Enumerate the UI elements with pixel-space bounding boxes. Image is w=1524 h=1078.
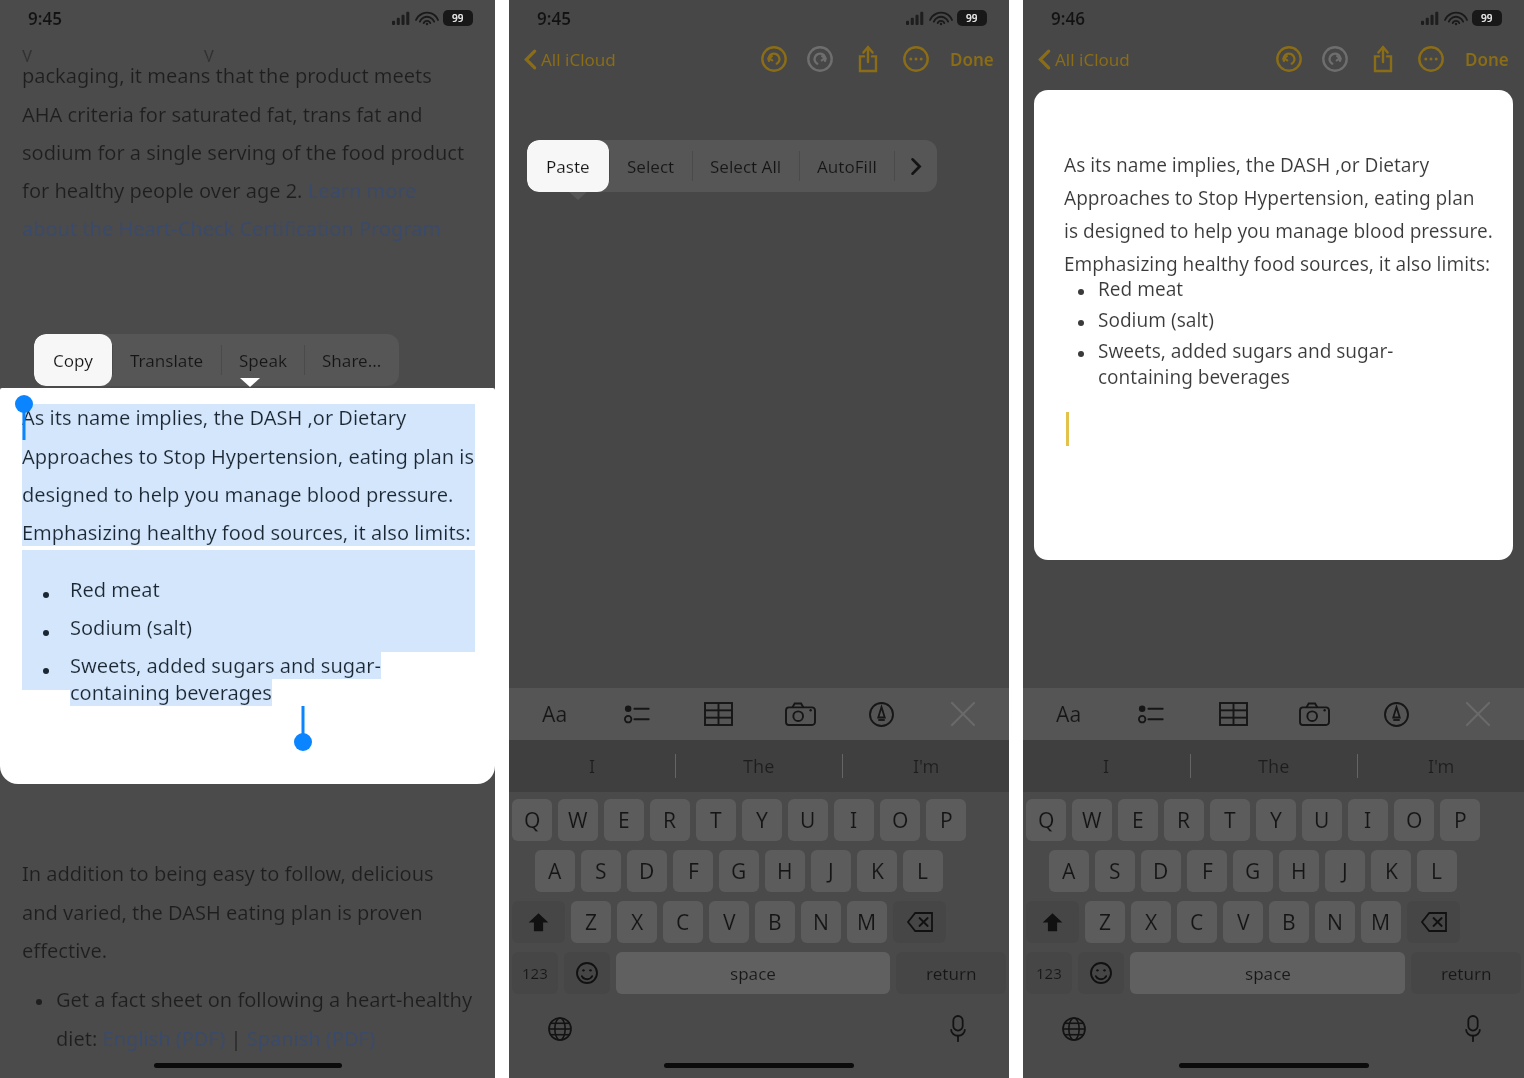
- button[interactable]: space: [616, 952, 890, 994]
- button[interactable]: E: [1118, 799, 1158, 841]
- button[interactable]: D: [627, 850, 667, 892]
- button[interactable]: G: [1233, 850, 1273, 892]
- button[interactable]: Select: [610, 140, 692, 192]
- button[interactable]: Camera: [780, 694, 820, 734]
- button[interactable]: M: [1361, 901, 1401, 943]
- button[interactable]: Z: [1085, 901, 1125, 943]
- button[interactable]: Checklist: [1131, 694, 1171, 734]
- button[interactable]: Change keyboard: [543, 1012, 577, 1046]
- button[interactable]: A: [1049, 850, 1089, 892]
- button[interactable]: space: [1130, 952, 1405, 994]
- button[interactable]: Close: [1458, 694, 1498, 734]
- button[interactable]: Redo: [1320, 44, 1350, 74]
- button[interactable]: F: [1187, 850, 1227, 892]
- button[interactable]: G: [719, 850, 759, 892]
- button[interactable]: T: [1210, 799, 1250, 841]
- button[interactable]: Emoji: [1078, 952, 1124, 994]
- button[interactable]: Shift: [1026, 901, 1079, 943]
- button[interactable]: Backspace: [1407, 901, 1460, 943]
- button[interactable]: Checklist: [617, 694, 657, 734]
- button[interactable]: B: [1269, 901, 1309, 943]
- button[interactable]: More: [1416, 44, 1446, 74]
- button[interactable]: W: [1072, 799, 1112, 841]
- button[interactable]: Format: [535, 694, 575, 734]
- button[interactable]: Change keyboard: [1057, 1012, 1091, 1046]
- button[interactable]: Paste: [527, 140, 609, 192]
- button[interactable]: D: [1141, 850, 1181, 892]
- button[interactable]: Emoji: [564, 952, 610, 994]
- button[interactable]: Shift: [512, 901, 565, 943]
- button[interactable]: Done: [947, 44, 997, 75]
- button[interactable]: O: [880, 799, 920, 841]
- button[interactable]: R: [650, 799, 690, 841]
- button[interactable]: F: [673, 850, 713, 892]
- button[interactable]: Z: [571, 901, 611, 943]
- button[interactable]: U: [788, 799, 828, 841]
- button[interactable]: H: [765, 850, 805, 892]
- button[interactable]: Share: [853, 44, 883, 74]
- button[interactable]: Undo: [1274, 44, 1304, 74]
- button[interactable]: Backspace: [893, 901, 946, 943]
- button[interactable]: Markup: [861, 694, 901, 734]
- button[interactable]: Dictate: [1456, 1012, 1490, 1046]
- button[interactable]: Done: [1462, 44, 1512, 75]
- button[interactable]: Select All: [693, 140, 799, 192]
- button[interactable]: H: [1279, 850, 1319, 892]
- button[interactable]: X: [1131, 901, 1171, 943]
- button[interactable]: Share: [1368, 44, 1398, 74]
- button[interactable]: return: [896, 952, 1006, 994]
- button[interactable]: P: [926, 799, 966, 841]
- button[interactable]: L: [1417, 850, 1457, 892]
- button[interactable]: Share...: [305, 334, 399, 386]
- button[interactable]: P: [1440, 799, 1480, 841]
- button[interactable]: E: [604, 799, 644, 841]
- button[interactable]: As its name implies, the DASH ,or Dietar…: [1034, 90, 1513, 560]
- button[interactable]: Close: [943, 694, 983, 734]
- button[interactable]: 123: [1026, 952, 1072, 994]
- button[interactable]: Y: [742, 799, 782, 841]
- button[interactable]: return: [1411, 952, 1521, 994]
- button[interactable]: All iCloud: [1035, 44, 1134, 75]
- button[interactable]: Camera: [1294, 694, 1334, 734]
- button[interactable]: Format: [1049, 694, 1089, 734]
- button[interactable]: A: [535, 850, 575, 892]
- button[interactable]: All iCloud: [521, 44, 620, 75]
- button[interactable]: Table: [1213, 694, 1253, 734]
- button[interactable]: More: [901, 44, 931, 74]
- button[interactable]: C: [663, 901, 703, 943]
- button[interactable]: J: [811, 850, 851, 892]
- button[interactable]: Undo: [759, 44, 789, 74]
- button[interactable]: Redo: [805, 44, 835, 74]
- button[interactable]: S: [581, 850, 621, 892]
- button[interactable]: Q: [512, 799, 552, 841]
- button[interactable]: Y: [1256, 799, 1296, 841]
- button[interactable]: 123: [512, 952, 558, 994]
- button[interactable]: Dictate: [941, 1012, 975, 1046]
- button[interactable]: Markup: [1376, 694, 1416, 734]
- button[interactable]: N: [801, 901, 841, 943]
- button[interactable]: Copy: [34, 334, 112, 386]
- button[interactable]: R: [1164, 799, 1204, 841]
- button[interactable]: N: [1315, 901, 1355, 943]
- button[interactable]: B: [755, 901, 795, 943]
- button[interactable]: More actions: [895, 140, 937, 192]
- button[interactable]: C: [1177, 901, 1217, 943]
- button[interactable]: The: [1191, 740, 1357, 792]
- button[interactable]: I: [1348, 799, 1388, 841]
- button[interactable]: J: [1325, 850, 1365, 892]
- button[interactable]: S: [1095, 850, 1135, 892]
- button[interactable]: I: [834, 799, 874, 841]
- button[interactable]: K: [857, 850, 897, 892]
- button[interactable]: Translate: [113, 334, 221, 386]
- button[interactable]: V: [709, 901, 749, 943]
- button[interactable]: Speak: [222, 334, 304, 386]
- button[interactable]: V: [1223, 901, 1263, 943]
- button[interactable]: Table: [698, 694, 738, 734]
- button[interactable]: L: [903, 850, 943, 892]
- button[interactable]: O: [1394, 799, 1434, 841]
- button[interactable]: AutoFill: [800, 140, 894, 192]
